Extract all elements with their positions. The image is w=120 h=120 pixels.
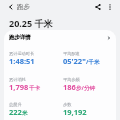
- button[interactable]: Back: [5, 1, 17, 13]
- staticText: 总爬升: [9, 102, 22, 107]
- staticText: 1:48:51: [9, 56, 35, 66]
- button[interactable]: 跑步详情: [4, 30, 116, 45]
- button[interactable]: Share: [92, 1, 103, 12]
- staticText: 222: [9, 107, 22, 117]
- staticText: 19,192: [63, 107, 87, 117]
- staticText: 20.25 千米: [9, 17, 53, 29]
- staticText: 千卡: [29, 85, 41, 92]
- staticText: 累计运动时长: [9, 51, 35, 56]
- staticText: 05'22": [63, 56, 86, 66]
- staticText: 186: [63, 82, 76, 92]
- staticText: 平均配速: [63, 51, 80, 56]
- staticText: 累计消耗: [9, 77, 26, 82]
- staticText: 米: [22, 110, 28, 117]
- staticText: /千米: [86, 58, 100, 66]
- staticText: 步数: [63, 102, 72, 107]
- staticText: 跑步详情: [9, 34, 31, 41]
- staticText: 1,798: [9, 82, 29, 92]
- staticText: 平均步频: [63, 77, 80, 82]
- staticText: 步/分钟: [76, 84, 96, 92]
- staticText: 跑步: [17, 3, 30, 11]
- button[interactable]: More options: [104, 1, 115, 12]
